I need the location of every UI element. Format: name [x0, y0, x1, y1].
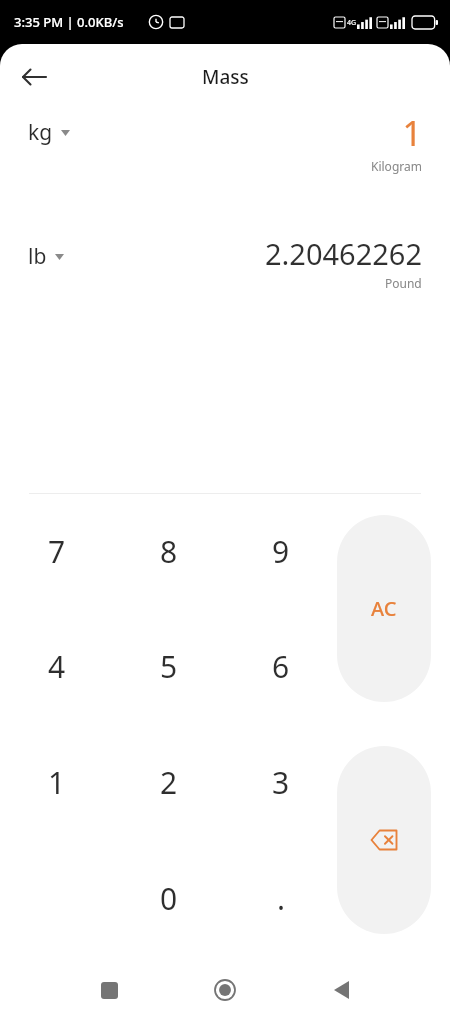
staticText: .	[277, 878, 286, 919]
button[interactable]: 8	[113, 494, 225, 609]
button[interactable]: 0	[113, 840, 225, 956]
button[interactable]: 1	[0, 724, 113, 840]
staticText: Kilogram	[371, 158, 422, 174]
staticText: 4	[48, 646, 66, 687]
staticText: 5	[160, 646, 178, 687]
staticText: 4G	[347, 18, 357, 28]
staticText: kg	[28, 118, 53, 147]
button[interactable]: 4	[0, 609, 113, 724]
button[interactable]: Recents	[85, 966, 133, 1014]
button[interactable]: .	[225, 840, 337, 956]
staticText: Pound	[385, 275, 422, 291]
staticText: 1	[402, 110, 422, 156]
staticText: lb	[28, 242, 47, 271]
staticText: 2.20462262	[264, 234, 422, 273]
button[interactable]: 2	[113, 724, 225, 840]
staticText: 2	[160, 762, 178, 803]
button[interactable]: 5	[113, 609, 225, 724]
button[interactable]: Backspace	[337, 746, 431, 934]
staticText: 0	[160, 878, 178, 919]
staticText: AC	[371, 595, 397, 622]
button[interactable]: 6	[225, 609, 337, 724]
button[interactable]: kg	[28, 110, 422, 174]
button[interactable]: 9	[225, 494, 337, 609]
staticText: Mass	[202, 64, 249, 90]
button[interactable]: Back	[317, 966, 365, 1014]
button[interactable]: Home	[201, 966, 249, 1014]
button[interactable]: AC	[337, 515, 431, 702]
staticText: 9	[272, 531, 290, 572]
staticText: 7	[48, 531, 66, 572]
button[interactable]: 7	[0, 494, 113, 609]
staticText: 3	[272, 762, 290, 803]
button[interactable]: lb	[28, 234, 422, 291]
button[interactable]: Back	[14, 57, 54, 97]
staticText: 1	[48, 762, 66, 803]
staticText: 3:35 PM | 0.0KB/s	[14, 13, 124, 31]
staticText: 8	[160, 531, 178, 572]
button[interactable]: 3	[225, 724, 337, 840]
staticText: 6	[272, 646, 290, 687]
